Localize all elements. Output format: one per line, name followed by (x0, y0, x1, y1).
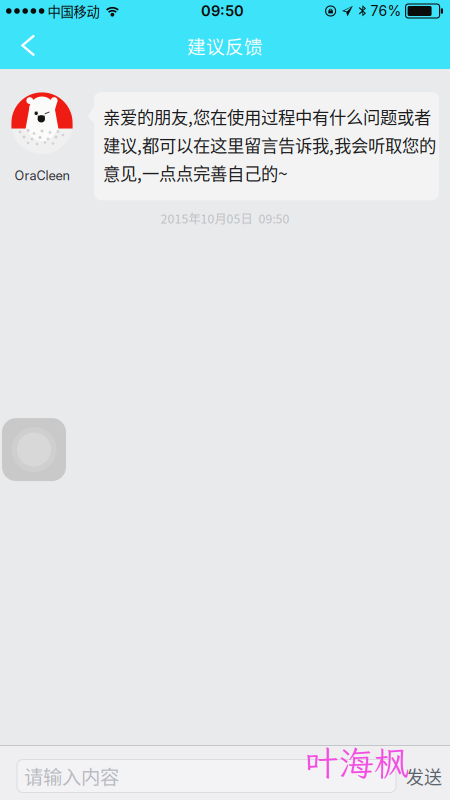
staticText: 中国移动 (47, 1, 99, 21)
staticText: 09:50 (201, 2, 244, 20)
staticText: 请输入内容 (24, 762, 119, 790)
staticText: 叶海枫 (304, 740, 409, 786)
staticText: 亲爱的朋友,您在使用过程中有什么问题或者建议,都可以在这里留言告诉我,我会听取您… (103, 104, 436, 185)
staticText: 建议反馈 (187, 32, 263, 59)
staticText: OraCleen (14, 168, 69, 183)
button[interactable]: 请输入内容 (17, 759, 396, 792)
button[interactable]: Back (0, 22, 50, 69)
staticText: 2015年10月05日 09:50 (160, 209, 289, 227)
button[interactable]: 发送 (401, 756, 447, 796)
staticText: 发送 (406, 763, 442, 789)
staticText: 76% (371, 2, 402, 19)
